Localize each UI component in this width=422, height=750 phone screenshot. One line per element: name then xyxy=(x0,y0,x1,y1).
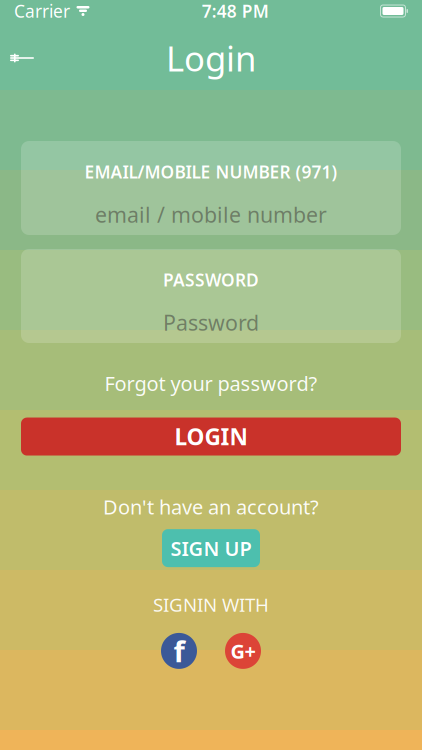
button[interactable]: LOGIN xyxy=(21,418,401,456)
staticText: 7:48 PM xyxy=(202,0,269,22)
staticText: SIGNIN WITH xyxy=(153,592,269,617)
button[interactable]: Sign in with Google Plus xyxy=(225,633,261,669)
staticText: LOGIN xyxy=(174,421,247,452)
staticText: Password xyxy=(163,308,259,337)
staticText: EMAIL/MOBILE NUMBER (971) xyxy=(84,160,337,183)
staticText: email / mobile number xyxy=(95,200,327,229)
staticText: Forgot your password? xyxy=(104,370,317,397)
button[interactable]: EMAIL/MOBILE NUMBER (971) xyxy=(21,141,401,235)
staticText: Carrier xyxy=(14,0,70,22)
staticText: PASSWORD xyxy=(163,268,259,291)
button[interactable]: Back xyxy=(0,38,44,78)
staticText: SIGN UP xyxy=(170,535,251,561)
button[interactable]: PASSWORD xyxy=(21,249,401,343)
staticText: Don't have an account? xyxy=(103,494,319,520)
staticText: f xyxy=(173,631,184,670)
button[interactable]: Forgot your password? xyxy=(94,365,327,402)
button[interactable]: SIGN UP xyxy=(162,529,260,567)
staticText: Login xyxy=(166,35,256,81)
staticText: G+ xyxy=(230,638,255,664)
button[interactable]: Sign in with Facebook xyxy=(161,633,197,669)
